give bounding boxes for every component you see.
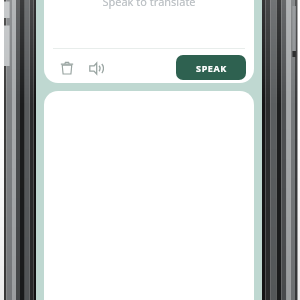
staticText: SPEAK xyxy=(196,62,227,74)
button[interactable]: Play audio xyxy=(82,55,108,81)
staticText: Speak to translate xyxy=(102,0,196,9)
button[interactable]: SPEAK xyxy=(176,55,246,80)
button[interactable]: Clear xyxy=(54,55,80,81)
